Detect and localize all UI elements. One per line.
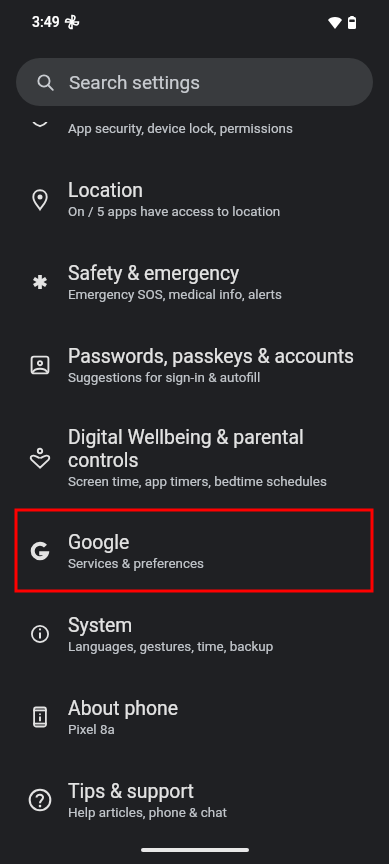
button[interactable]: Passwords, passkeys & accounts xyxy=(0,323,389,406)
staticText: Languages, gestures, time, backup xyxy=(68,638,274,655)
staticText: Passwords, passkeys & accounts xyxy=(68,344,355,367)
button[interactable]: Search settings xyxy=(16,58,373,106)
staticText: Search settings xyxy=(69,71,200,93)
other: Battery xyxy=(348,16,356,29)
button[interactable]: Location xyxy=(0,157,389,240)
staticText: Digital Wellbeing & parental controls xyxy=(68,425,304,471)
staticText: Security & privacy xyxy=(68,95,221,118)
staticText: Screen time, app timers, bedtime schedul… xyxy=(68,473,327,490)
button[interactable]: About phone xyxy=(0,675,389,758)
staticText: About phone xyxy=(68,696,179,719)
staticText: Google xyxy=(68,530,130,553)
staticText: On / 5 apps have access to location xyxy=(68,203,281,220)
button[interactable]: Google xyxy=(0,509,389,592)
other: Wi-Fi xyxy=(328,16,342,29)
staticText: Tips & support xyxy=(68,779,194,802)
button[interactable]: Tips & support xyxy=(0,758,389,841)
button[interactable]: Security & privacy xyxy=(0,74,389,157)
staticText: Location xyxy=(68,178,144,201)
staticText: App security, device lock, permissions xyxy=(68,120,293,137)
staticText: Suggestions for sign-in & autofill xyxy=(68,369,261,386)
button[interactable]: System xyxy=(0,592,389,675)
button[interactable]: Safety & emergency xyxy=(0,240,389,323)
staticText: 3:49 xyxy=(32,14,60,30)
staticText: Services & preferences xyxy=(68,555,205,572)
staticText: Emergency SOS, medical info, alerts xyxy=(68,286,282,303)
staticText: Safety & emergency xyxy=(68,261,240,284)
staticText: System xyxy=(68,613,133,636)
staticText: Help articles, phone & chat xyxy=(68,804,227,821)
button[interactable]: Digital Wellbeing & parental controls xyxy=(0,406,389,509)
staticText: Pixel 8a xyxy=(68,721,115,738)
